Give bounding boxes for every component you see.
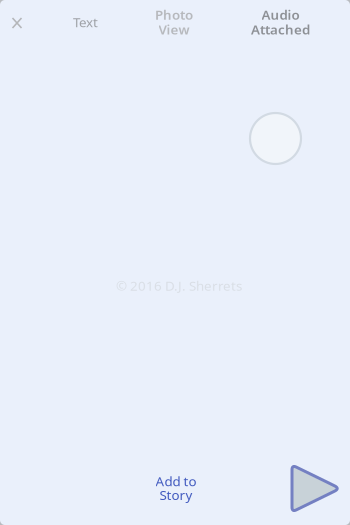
staticText: Add to [155,472,196,490]
button[interactable]: Photo [137,0,211,44]
staticText: Audio [261,6,299,23]
staticText: Attached [251,20,310,38]
button[interactable]: Send [292,465,340,512]
staticText: View [158,20,189,38]
staticText: Photo [155,6,193,23]
button[interactable]: Close [0,0,34,45]
button[interactable]: Add to [134,468,218,508]
staticText: Story [159,486,192,504]
staticText: Text [73,13,98,31]
staticText: © 2016 D.J. Sherrets [116,277,242,294]
button[interactable]: Text [34,0,137,44]
button[interactable]: Audio [211,0,350,44]
